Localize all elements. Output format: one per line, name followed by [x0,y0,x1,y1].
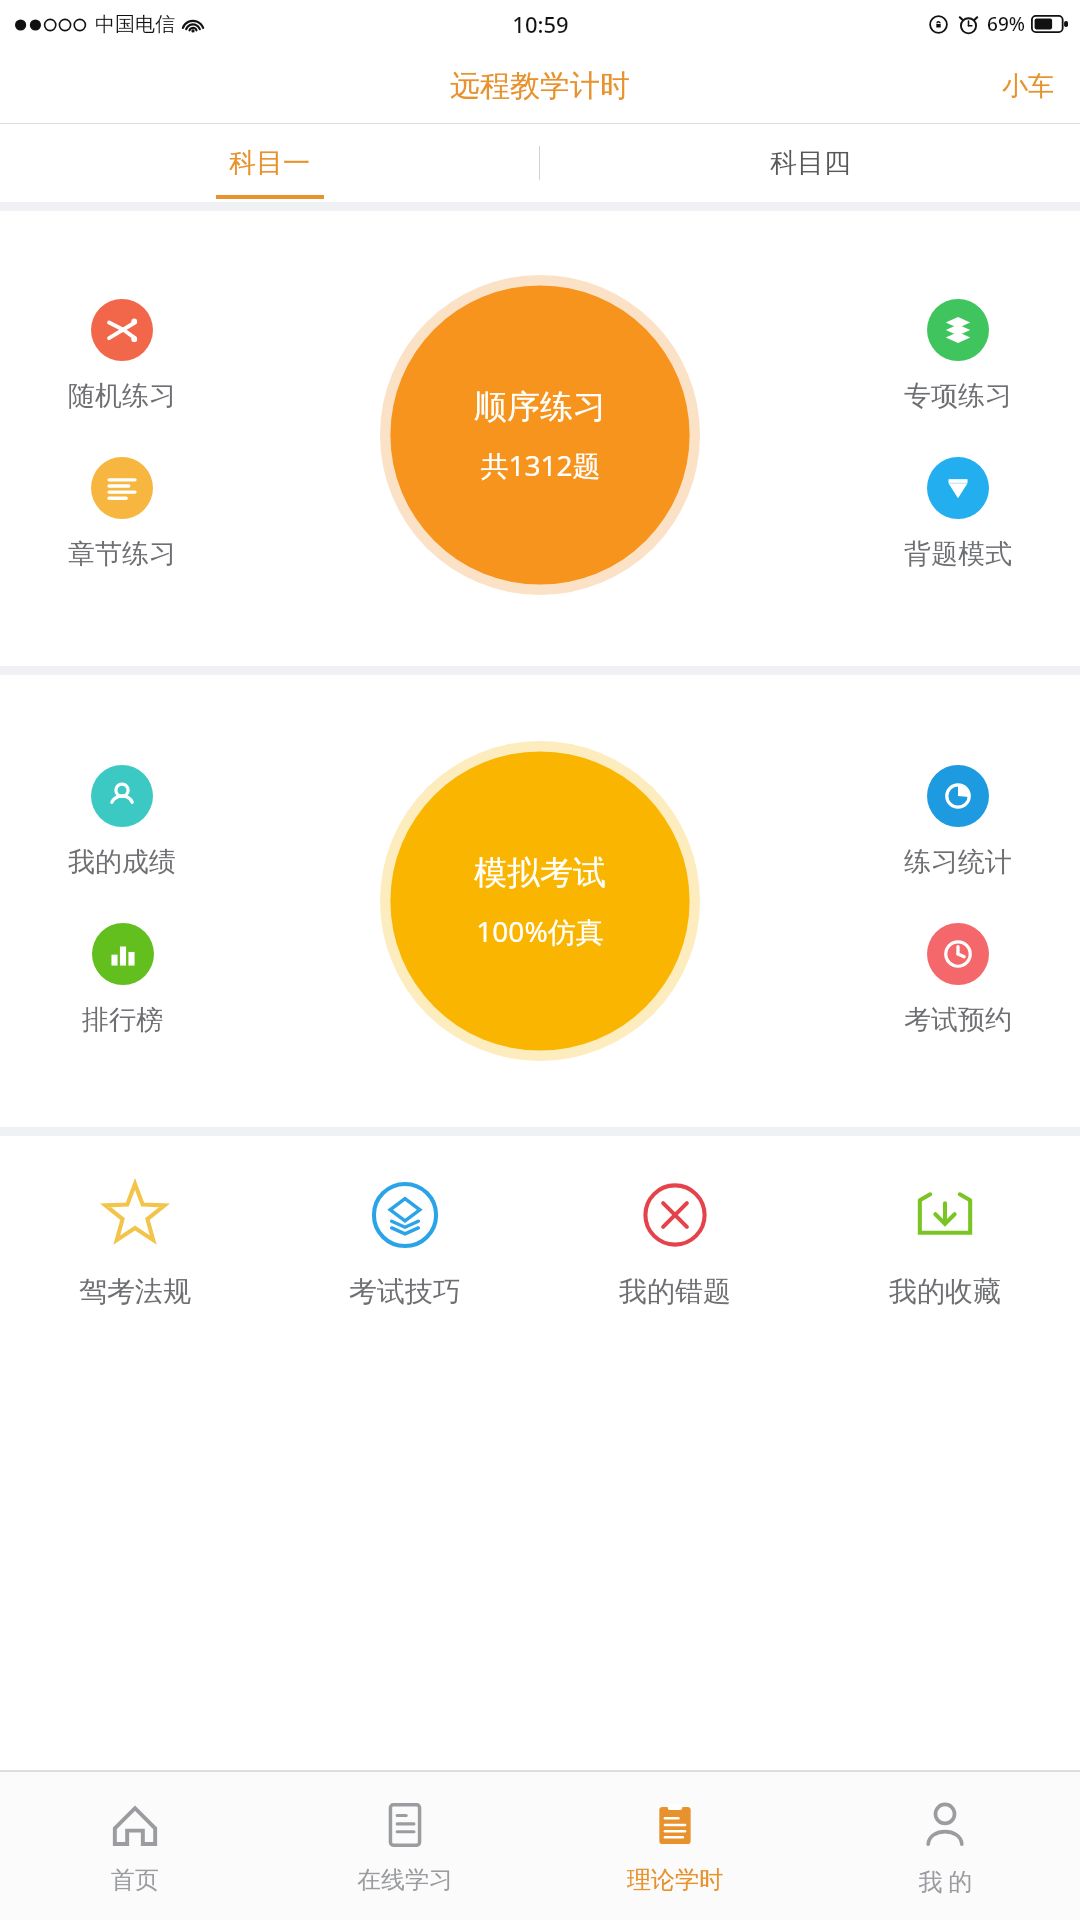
staticText: 我 的 [918,1864,973,1897]
button[interactable]: 我的错题 [540,1136,810,1351]
staticText: 在线学习 [357,1865,453,1895]
staticText: 69% [987,11,1025,37]
button[interactable]: 专项练习 [898,297,1018,415]
staticText: 考试技巧 [349,1274,461,1309]
button[interactable]: 科目四 [540,124,1080,202]
button[interactable]: 考试技巧 [270,1136,540,1351]
button[interactable]: 我的成绩 [62,763,182,881]
staticText: 科目一 [229,146,310,180]
button[interactable]: 章节练习 [62,455,182,573]
button[interactable]: 背题模式 [898,455,1018,573]
staticText: 随机练习 [68,379,176,413]
button[interactable]: 在线学习 [270,1772,540,1920]
button[interactable]: 科目一 [0,124,539,202]
staticText: 排行榜 [82,1003,163,1037]
button[interactable]: 模拟考试 [380,741,700,1061]
staticText: 练习统计 [904,845,1012,879]
staticText: 小车 [1002,70,1054,103]
staticText: 模拟考试 [474,852,606,894]
button[interactable]: 驾考法规 [0,1136,270,1351]
staticText: 理论学时 [627,1865,723,1895]
button[interactable]: 顺序练习 [380,275,700,595]
staticText: 我的收藏 [889,1274,1001,1309]
staticText: 100%仿真 [476,912,604,950]
staticText: 章节练习 [68,537,176,571]
staticText: 背题模式 [904,537,1012,571]
staticText: 10:59 [512,9,569,39]
staticText: 远程教学计时 [450,67,630,105]
button[interactable]: 首页 [0,1772,270,1920]
staticText: 科目四 [770,146,851,180]
button[interactable]: 理论学时 [540,1772,810,1920]
staticText: 我的错题 [619,1274,731,1309]
button[interactable]: 我的收藏 [810,1136,1080,1351]
staticText: 驾考法规 [79,1274,191,1309]
staticText: 顺序练习 [474,386,606,428]
button[interactable]: 我 的 [810,1772,1080,1920]
staticText: 考试预约 [904,1003,1012,1037]
staticText: 我的成绩 [68,845,176,879]
staticText: 中国电信 [95,12,175,37]
staticText: 首页 [111,1865,159,1895]
button[interactable]: 考试预约 [898,921,1018,1039]
button[interactable]: 练习统计 [898,763,1018,881]
button[interactable]: 排行榜 [76,921,169,1039]
staticText: 共1312题 [480,446,601,484]
staticText: 专项练习 [904,379,1012,413]
button[interactable]: 随机练习 [62,297,182,415]
button[interactable]: 小车 [976,56,1080,117]
